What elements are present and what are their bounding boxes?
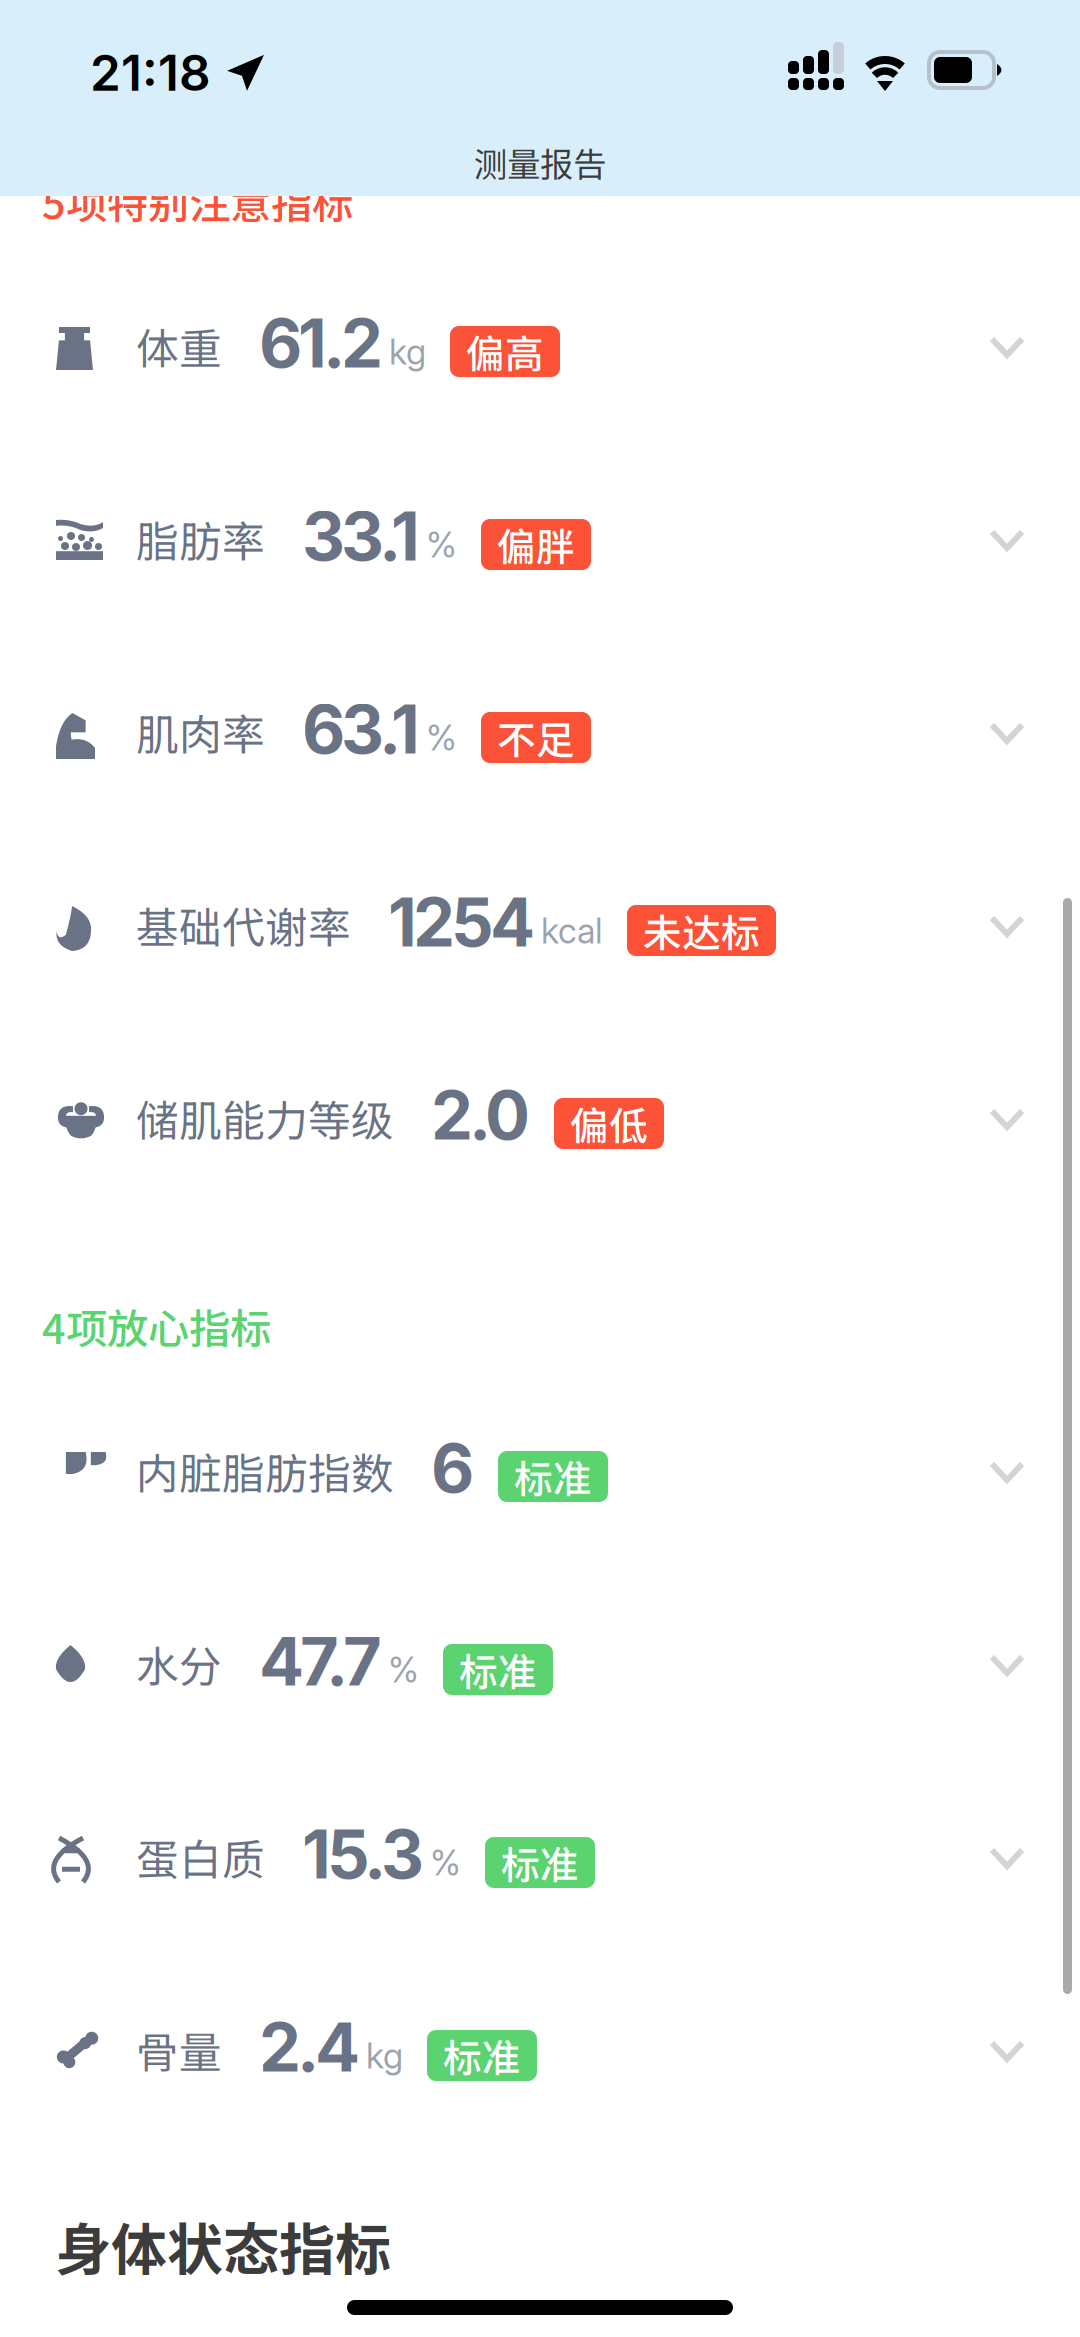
staticText: 标准 [514,1448,592,1504]
staticText: 肌肉率 [136,701,265,763]
staticText: 21:18 [90,43,211,103]
staticText: 47.7 [259,1621,382,1702]
staticText: % [388,1649,419,1691]
staticText: 脂肪率 [136,508,265,570]
staticText: 1254 [388,882,535,963]
button[interactable]: 脂肪率 [0,430,1080,623]
staticText: 水分 [136,1633,222,1695]
button[interactable]: 水分 [0,1555,1080,1748]
staticText: 标准 [501,1834,579,1890]
staticText: 体重 [136,315,222,377]
button[interactable]: 肌肉率 [0,623,1080,816]
staticText: 2.4 [259,2007,360,2088]
staticText: kg [366,2035,403,2077]
staticText: % [430,1842,461,1884]
staticText: 15.3 [302,1814,424,1895]
button[interactable]: 蛋白质 [0,1748,1080,1941]
staticText: 偏胖 [497,516,575,572]
button[interactable]: 骨量 [0,1941,1080,2134]
staticText: 标准 [459,1641,537,1697]
button[interactable]: 基础代谢率 [0,816,1080,1009]
button[interactable]: 储肌能力等级 [0,1009,1080,1202]
staticText: 2.0 [431,1075,530,1156]
staticText: 测量报告 [474,138,606,186]
staticText: 偏高 [466,323,544,379]
staticText: kg [389,331,426,373]
staticText: 偏低 [570,1095,648,1151]
staticText: 内脏脂肪指数 [136,1440,394,1502]
staticText: 身体状态指标 [55,2205,391,2286]
staticText: 储肌能力等级 [136,1087,394,1149]
staticText: 61.2 [259,303,383,384]
button[interactable]: 体重 [0,237,1080,430]
staticText: 33.1 [302,496,420,577]
staticText: 63.1 [302,689,420,770]
staticText: 未达标 [643,902,760,958]
staticText: 6 [431,1428,474,1509]
staticText: % [426,717,457,759]
staticText: % [426,524,457,566]
staticText: 蛋白质 [136,1826,265,1888]
staticText: 5项特别注意指标 [42,171,353,231]
staticText: 4项放心指标 [42,1296,271,1356]
staticText: 标准 [443,2027,521,2083]
button[interactable]: 内脏脂肪指数 [0,1362,1080,1555]
staticText: kcal [541,910,603,952]
staticText: 不足 [497,709,575,765]
staticText: 基础代谢率 [136,894,351,956]
staticText: 骨量 [136,2019,222,2081]
